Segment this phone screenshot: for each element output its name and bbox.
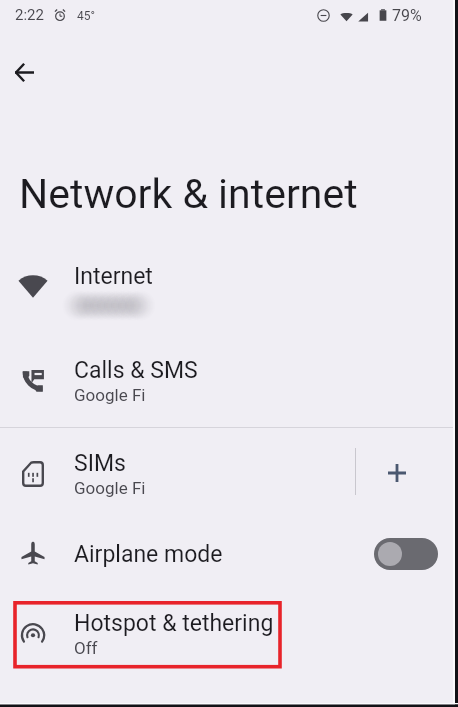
staticText: 45°	[77, 9, 95, 23]
staticText: Calls & SMS	[74, 357, 198, 384]
staticText: Google Fi	[74, 385, 146, 405]
staticText: SIMs	[74, 450, 126, 477]
staticText: 2:22	[15, 6, 44, 24]
button[interactable]	[0, 250, 458, 326]
staticText: Network & internet	[19, 170, 358, 218]
staticText: 79%	[392, 6, 422, 25]
staticText: Airplane mode	[74, 541, 223, 568]
button[interactable]: Back	[0, 48, 48, 96]
button[interactable]: Airplane mode toggle	[374, 538, 438, 570]
staticText: Internet	[74, 263, 153, 290]
button[interactable]	[0, 515, 458, 591]
button[interactable]	[0, 436, 458, 512]
button[interactable]	[0, 596, 458, 672]
staticText: Off	[74, 638, 98, 658]
staticText: Google Fi	[74, 478, 146, 498]
button[interactable]: Add SIM	[373, 449, 421, 497]
staticText: Hotspot & tethering	[74, 610, 274, 637]
button[interactable]	[0, 343, 458, 419]
